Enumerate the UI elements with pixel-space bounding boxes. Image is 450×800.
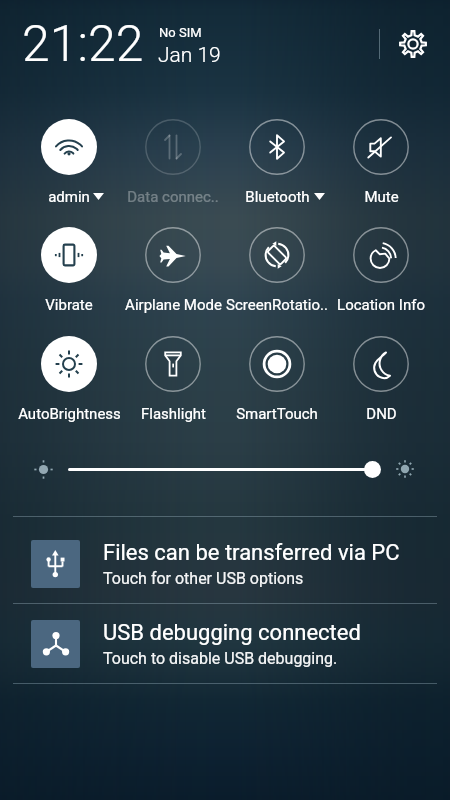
staticText: AutoBrightness — [18, 405, 121, 423]
staticText: Touch to disable USB debugging. — [103, 649, 338, 668]
staticText: Touch for other USB options — [103, 569, 304, 588]
staticText: Bluetooth — [245, 188, 310, 206]
button[interactable] — [121, 313, 225, 414]
button[interactable] — [17, 204, 121, 305]
button[interactable]: Settings — [391, 22, 435, 66]
staticText: DND — [366, 405, 397, 423]
staticText: USB debugging connected — [103, 620, 361, 646]
staticText: Flashlight — [141, 405, 206, 423]
staticText: Airplane Mode — [125, 296, 222, 314]
button[interactable] — [329, 204, 433, 305]
staticText: Mute — [364, 188, 399, 206]
button[interactable] — [17, 96, 121, 197]
button[interactable] — [121, 204, 225, 305]
staticText: Vibrate — [45, 296, 93, 314]
button[interactable] — [0, 604, 450, 683]
button[interactable]: Brightness slider — [364, 461, 381, 478]
staticText: 21:22 — [22, 15, 144, 74]
button[interactable] — [225, 96, 329, 197]
button[interactable] — [0, 517, 450, 603]
button[interactable] — [17, 313, 121, 414]
button[interactable] — [329, 313, 433, 414]
button[interactable] — [225, 204, 329, 305]
staticText: Location Info — [337, 296, 425, 314]
staticText: Files can be transferred via PC — [103, 540, 400, 566]
staticText: ScreenRotatio.. — [226, 296, 328, 314]
staticText: admin — [48, 188, 90, 206]
staticText: SmartTouch — [236, 405, 318, 423]
staticText: No SIM — [159, 25, 202, 40]
button[interactable] — [225, 313, 329, 414]
staticText: Data connec.. — [127, 188, 219, 206]
staticText: Jan 19 — [158, 43, 221, 68]
button[interactable] — [121, 96, 225, 197]
button[interactable] — [329, 96, 433, 197]
